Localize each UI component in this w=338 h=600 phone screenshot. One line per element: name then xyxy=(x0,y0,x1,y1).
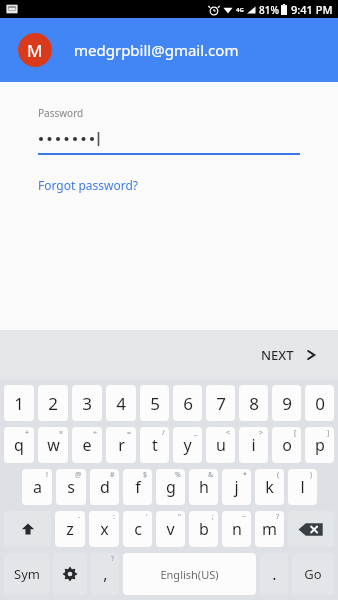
staticText: / xyxy=(162,428,165,438)
staticText: ( xyxy=(277,470,280,480)
button[interactable]: j xyxy=(222,469,251,505)
button[interactable]: 6 xyxy=(173,385,202,421)
staticText: h xyxy=(199,476,209,498)
staticText: , xyxy=(103,563,108,585)
staticText: 1 xyxy=(14,392,24,415)
staticText: n xyxy=(232,518,242,540)
button[interactable]: Settings xyxy=(53,553,87,595)
staticText: ÷ xyxy=(93,428,98,438)
button[interactable]: NEXT xyxy=(239,336,338,374)
button[interactable]: h xyxy=(189,469,218,505)
staticText: Password xyxy=(38,106,84,120)
button[interactable]: q xyxy=(4,427,34,463)
staticText: 6 xyxy=(183,392,193,415)
button[interactable]: w xyxy=(38,427,68,463)
staticText: u xyxy=(216,434,226,456)
staticText: c xyxy=(134,518,142,540)
staticText: w xyxy=(47,434,60,456)
staticText: 2 xyxy=(48,392,58,415)
button[interactable]: l xyxy=(288,469,317,505)
staticText: M xyxy=(27,39,43,62)
staticText: r xyxy=(118,434,125,456)
staticText: t xyxy=(152,434,158,456)
button[interactable]: f xyxy=(123,469,152,505)
staticText: & xyxy=(208,470,214,480)
staticText: 5 xyxy=(150,392,160,415)
button[interactable]: Sym xyxy=(4,553,49,595)
staticText: " xyxy=(178,512,181,522)
staticText: e xyxy=(82,434,92,456)
staticText: ~ xyxy=(242,512,247,522)
staticText: [ xyxy=(294,428,297,438)
staticText: v xyxy=(166,518,175,540)
button[interactable]: s xyxy=(56,469,86,505)
staticText: g xyxy=(166,476,176,498)
button[interactable]: p xyxy=(305,427,334,463)
staticText: 7 xyxy=(216,392,226,415)
button[interactable]: b xyxy=(189,511,218,547)
button[interactable]: a xyxy=(22,469,52,505)
button[interactable]: n xyxy=(222,511,251,547)
staticText: * xyxy=(243,470,247,480)
button[interactable]: o xyxy=(272,427,301,463)
staticText: Forgot password? xyxy=(38,177,139,193)
staticText: $ xyxy=(143,470,148,480)
staticText: NEXT xyxy=(261,346,294,364)
button[interactable]: t xyxy=(140,427,169,463)
button[interactable]: 7 xyxy=(206,385,235,421)
button[interactable]: c xyxy=(123,511,152,547)
button[interactable]: g xyxy=(156,469,185,505)
staticText: 9 xyxy=(282,392,292,415)
button[interactable]: 2 xyxy=(38,385,68,421)
staticText: × xyxy=(59,428,64,438)
button[interactable]: Shift xyxy=(4,511,51,547)
button[interactable]: Go xyxy=(292,553,334,595)
button[interactable]: y xyxy=(173,427,202,463)
button[interactable]: 8 xyxy=(239,385,268,421)
button[interactable]: , xyxy=(91,553,119,595)
button[interactable]: M xyxy=(0,18,338,82)
staticText: o xyxy=(282,434,292,456)
staticText: l xyxy=(300,476,305,498)
staticText: ) xyxy=(310,470,313,480)
staticText: k xyxy=(265,476,274,498)
button[interactable]: 5 xyxy=(140,385,169,421)
staticText: + xyxy=(25,428,30,438)
button[interactable]: 0 xyxy=(305,385,334,421)
staticText: 0 xyxy=(315,392,325,415)
staticText: p xyxy=(315,434,325,456)
button[interactable]: English(US) xyxy=(123,553,256,595)
staticText: 81% xyxy=(259,3,279,17)
button[interactable]: d xyxy=(90,469,119,505)
staticText: ; xyxy=(212,512,214,522)
button[interactable]: 3 xyxy=(72,385,102,421)
button[interactable]: Forgot password? xyxy=(38,177,139,193)
button[interactable]: 9 xyxy=(272,385,301,421)
staticText: i xyxy=(251,434,256,456)
staticText: Go xyxy=(304,565,322,583)
staticText: - xyxy=(78,512,81,522)
button[interactable]: e xyxy=(72,427,102,463)
button[interactable]: Backspace xyxy=(288,511,334,547)
staticText: # xyxy=(110,470,115,480)
button[interactable]: u xyxy=(206,427,235,463)
button[interactable]: 1 xyxy=(4,385,34,421)
button[interactable]: x xyxy=(89,511,119,547)
button[interactable]: k xyxy=(255,469,284,505)
staticText: . xyxy=(272,563,277,585)
button[interactable]: z xyxy=(55,511,85,547)
button[interactable]: i xyxy=(239,427,268,463)
staticText: English(US) xyxy=(160,567,219,582)
button[interactable]: m xyxy=(255,511,284,547)
staticText: s xyxy=(67,476,75,498)
staticText: 8 xyxy=(249,392,259,415)
button[interactable]: 4 xyxy=(106,385,136,421)
staticText: j xyxy=(234,476,239,498)
staticText: z xyxy=(66,518,74,540)
button[interactable]: . xyxy=(260,553,288,595)
button[interactable]: r xyxy=(106,427,136,463)
staticText: = xyxy=(127,428,132,438)
button[interactable]: v xyxy=(156,511,185,547)
staticText: Sym xyxy=(14,565,40,583)
staticText: x xyxy=(100,518,109,540)
